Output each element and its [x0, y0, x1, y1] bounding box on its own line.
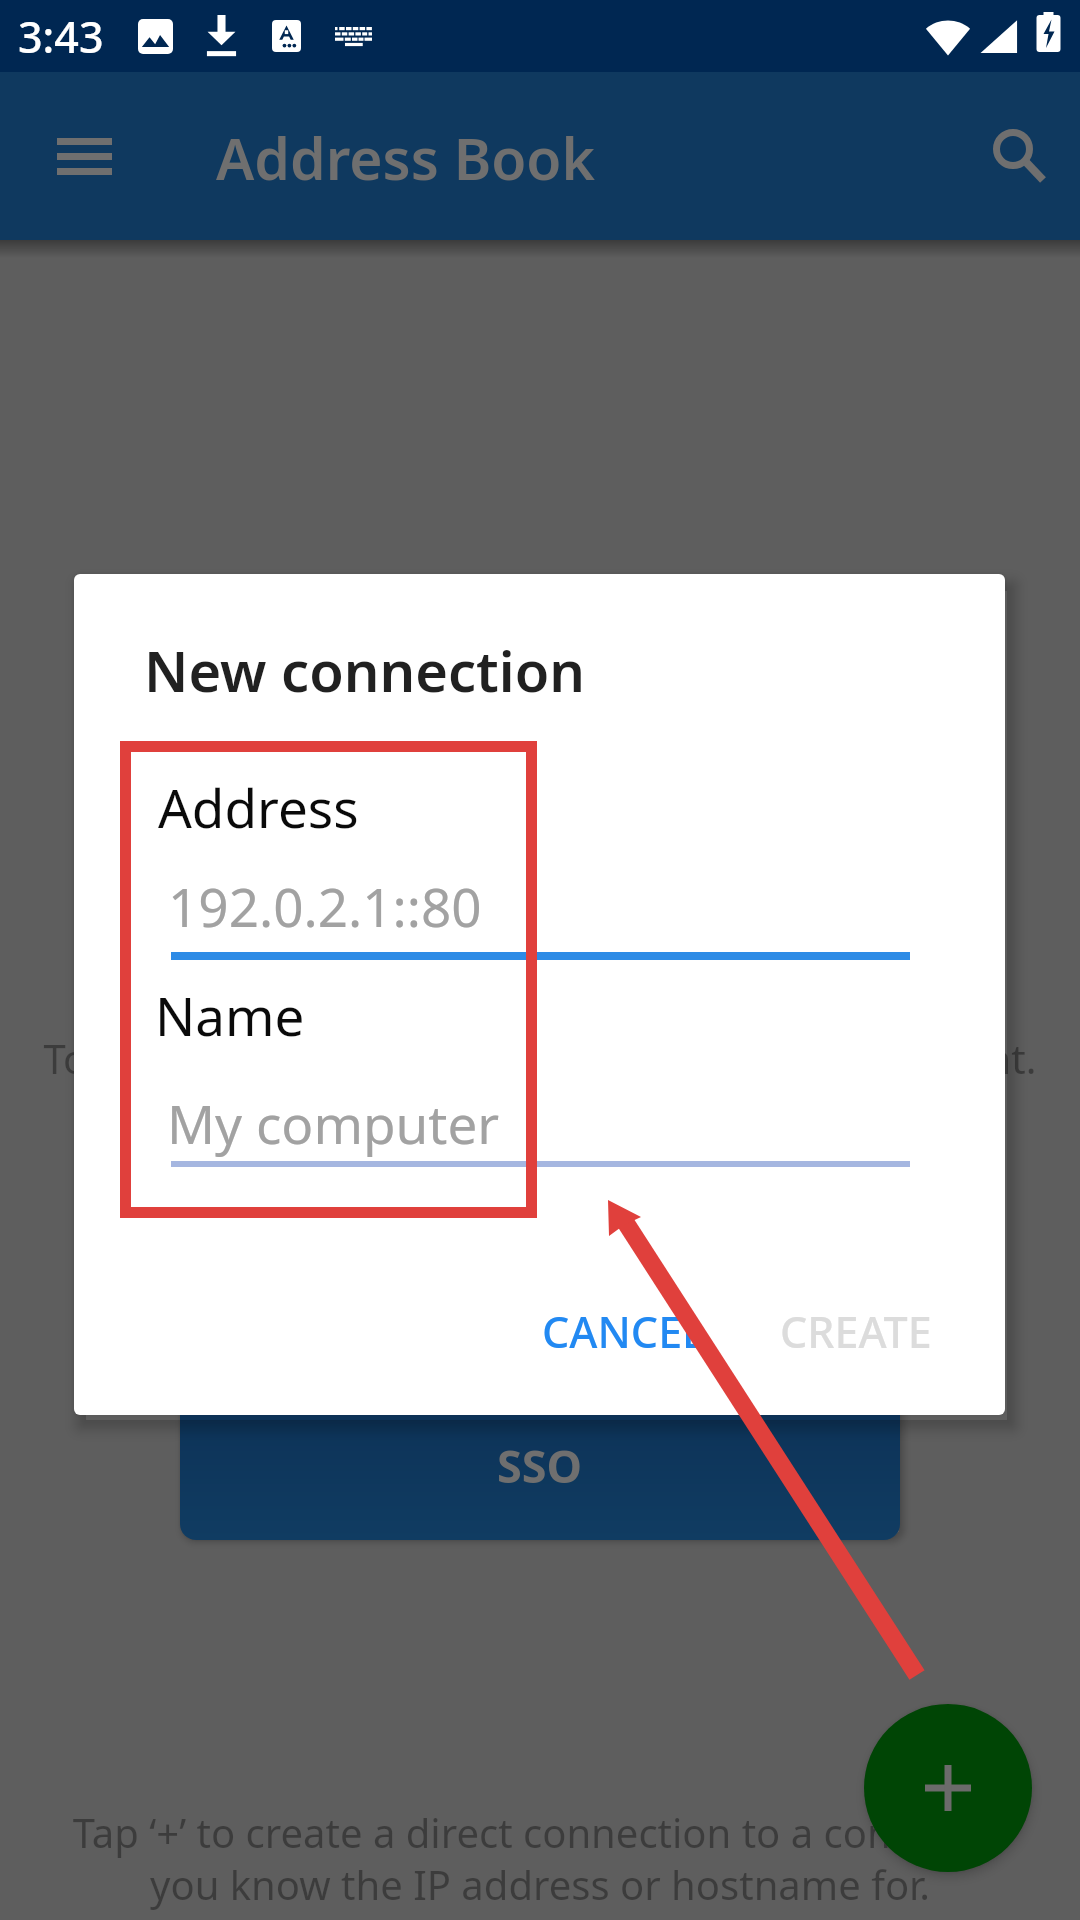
staticText: 3:43	[18, 7, 104, 66]
staticText: SSO	[497, 1435, 583, 1496]
staticText: To connect to a computer you must have a…	[0, 1031, 1080, 1085]
staticText: CANCEL	[542, 1302, 706, 1361]
staticText: Name	[155, 979, 305, 1051]
staticText: CREATE	[780, 1302, 932, 1361]
button[interactable]: CANCEL	[512, 1281, 736, 1381]
staticText: My computer	[167, 1087, 500, 1159]
button[interactable]: Add connection	[864, 1704, 1032, 1872]
staticText: Address	[158, 771, 359, 843]
button[interactable]: Search	[964, 108, 1076, 196]
staticText: Tap ‘+’ to create a direct connection to…	[0, 1805, 1080, 1912]
staticText: Address Book	[216, 119, 596, 197]
staticText: New connection	[144, 632, 585, 708]
staticText: 192.0.2.1::80	[168, 870, 482, 942]
button[interactable]: SSO	[180, 1390, 900, 1540]
button[interactable]: CREATE	[750, 1281, 962, 1381]
button[interactable]: Open navigation menu	[28, 120, 140, 192]
